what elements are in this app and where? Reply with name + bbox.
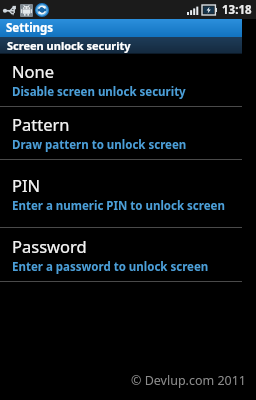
staticText: Disable screen unlock security bbox=[12, 84, 186, 100]
staticText: 13:18 bbox=[222, 2, 252, 18]
button[interactable]: Pattern bbox=[0, 107, 256, 159]
staticText: None bbox=[12, 60, 55, 82]
button[interactable]: None bbox=[0, 54, 256, 106]
button[interactable]: Password bbox=[0, 228, 256, 281]
staticText: PIN bbox=[12, 174, 41, 196]
button[interactable]: PIN bbox=[0, 160, 256, 227]
staticText: Draw pattern to unlock screen bbox=[12, 137, 187, 153]
staticText: Enter a password to unlock screen bbox=[12, 259, 209, 275]
staticText: © Devlup.com 2011 bbox=[131, 372, 247, 389]
staticText: Enter a numeric PIN to unlock screen bbox=[12, 198, 225, 214]
staticText: Screen unlock security bbox=[7, 38, 131, 53]
staticText: Password bbox=[12, 235, 87, 257]
staticText: Pattern bbox=[12, 113, 70, 135]
staticText: Settings bbox=[6, 20, 54, 36]
